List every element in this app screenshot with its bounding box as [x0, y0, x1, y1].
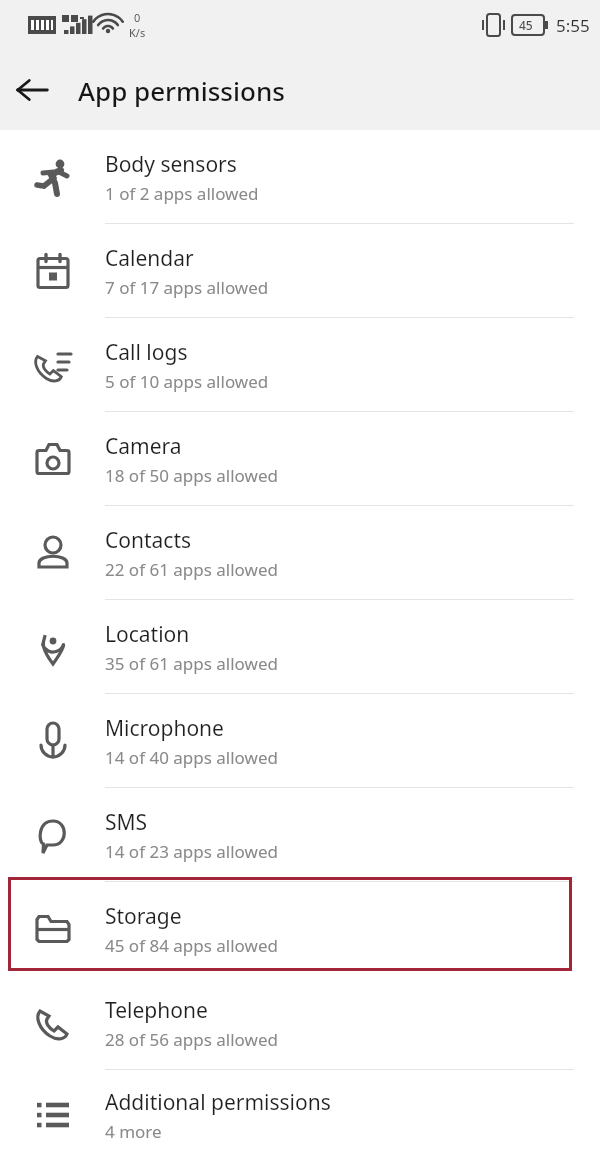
- staticText: 35 of 61 apps allowed: [105, 652, 278, 675]
- button[interactable]: Telephone: [0, 976, 600, 1070]
- staticText: Camera: [105, 432, 182, 461]
- staticText: 28 of 56 apps allowed: [105, 1028, 278, 1051]
- button[interactable]: SMS: [0, 788, 600, 882]
- staticText: Contacts: [105, 526, 192, 555]
- staticText: App permissions: [78, 73, 285, 108]
- staticText: Calendar: [105, 244, 194, 273]
- staticText: 1 of 2 apps allowed: [105, 182, 259, 205]
- button[interactable]: Additional permissions: [0, 1070, 600, 1160]
- staticText: Storage: [105, 902, 182, 931]
- button[interactable]: Body sensors: [0, 130, 600, 224]
- button[interactable]: Call logs: [0, 318, 600, 412]
- button[interactable]: Location: [0, 600, 600, 694]
- staticText: 14 of 40 apps allowed: [105, 746, 278, 769]
- staticText: 0: [134, 10, 141, 25]
- button[interactable]: Storage: [0, 882, 600, 976]
- staticText: Microphone: [105, 714, 224, 743]
- button[interactable]: Calendar: [0, 224, 600, 318]
- staticText: 14 of 23 apps allowed: [105, 840, 278, 863]
- staticText: 22 of 61 apps allowed: [105, 558, 278, 581]
- staticText: 4 more: [105, 1120, 162, 1143]
- staticText: Call logs: [105, 338, 188, 367]
- staticText: Body sensors: [105, 150, 237, 179]
- staticText: SMS: [105, 808, 148, 837]
- button[interactable]: Contacts: [0, 506, 600, 600]
- staticText: Telephone: [105, 996, 208, 1025]
- staticText: Additional permissions: [105, 1088, 331, 1117]
- button[interactable]: Back: [0, 58, 64, 122]
- button[interactable]: Microphone: [0, 694, 600, 788]
- staticText: 5:55: [556, 14, 590, 37]
- staticText: 45: [519, 17, 533, 33]
- staticText: 5 of 10 apps allowed: [105, 370, 269, 393]
- staticText: K/s: [129, 25, 146, 40]
- staticText: 7 of 17 apps allowed: [105, 276, 269, 299]
- staticText: 18 of 50 apps allowed: [105, 464, 278, 487]
- staticText: Location: [105, 620, 190, 649]
- button[interactable]: Camera: [0, 412, 600, 506]
- staticText: 45 of 84 apps allowed: [105, 934, 278, 957]
